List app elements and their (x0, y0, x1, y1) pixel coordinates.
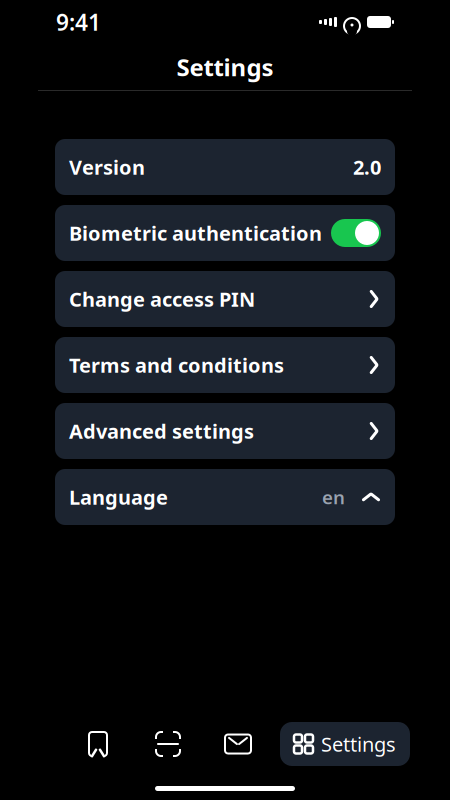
staticText: Biometric authentication (69, 220, 322, 246)
staticText: Settings (176, 51, 273, 83)
staticText: Terms and conditions (69, 352, 284, 378)
staticText: Language (69, 484, 168, 510)
button[interactable]: Bookmarks (70, 722, 126, 766)
button[interactable]: Advanced settings (55, 403, 395, 459)
button[interactable]: Mail (210, 722, 266, 766)
staticText: Advanced settings (69, 418, 254, 444)
staticText: 9:41 (56, 7, 101, 37)
button[interactable]: Terms and conditions (55, 337, 395, 393)
button[interactable]: Change access PIN (55, 271, 395, 327)
button[interactable]: Scan (140, 722, 196, 766)
button[interactable]: Language (55, 469, 395, 525)
staticText: en (322, 485, 345, 509)
staticText: Settings (321, 731, 396, 757)
button[interactable]: Biometric authentication (55, 205, 395, 261)
button[interactable]: Settings (280, 722, 410, 766)
staticText: Change access PIN (69, 286, 255, 312)
staticText: Version (69, 154, 145, 180)
staticText: 2.0 (353, 154, 381, 180)
